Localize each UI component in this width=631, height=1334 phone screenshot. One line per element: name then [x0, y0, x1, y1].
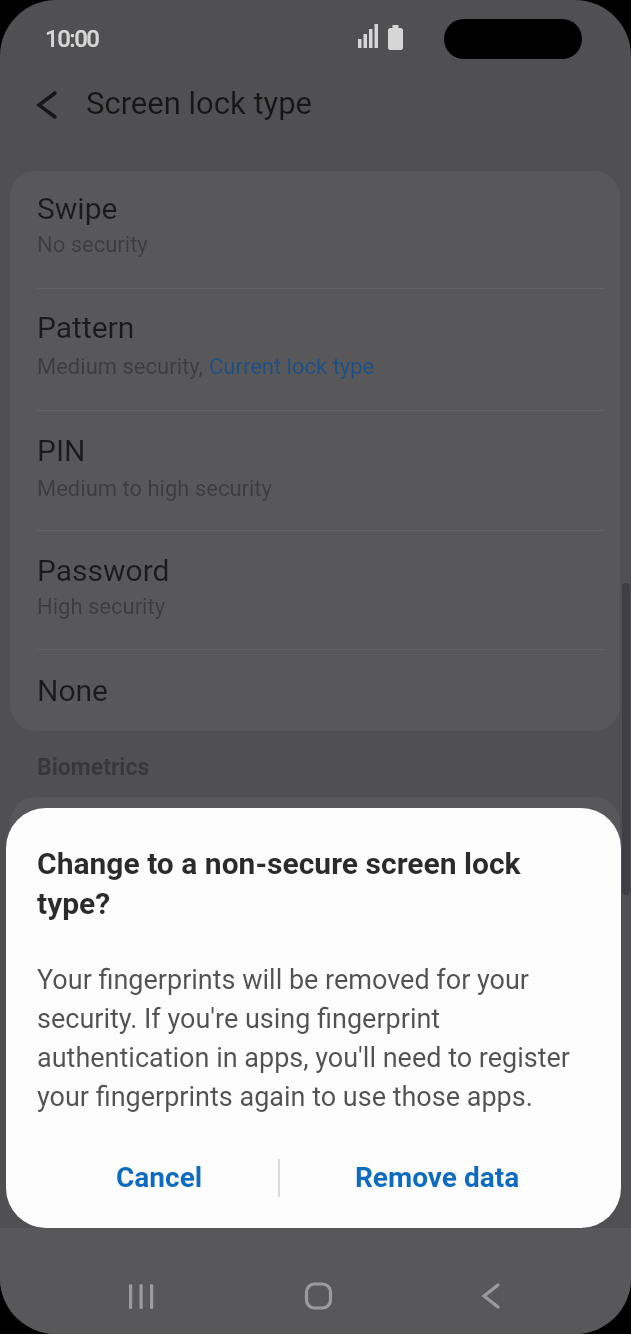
button[interactable]: Password [10, 531, 620, 649]
staticText: Biometrics [37, 754, 150, 781]
button[interactable]: Cancel [63, 1145, 255, 1209]
staticText: Password [37, 553, 170, 588]
button[interactable]: None [10, 650, 620, 731]
staticText: Change to a non-secure screen lock type? [37, 846, 521, 921]
staticText: Cancel [116, 1161, 203, 1194]
staticText: Medium to high security [37, 476, 272, 502]
staticText: Screen lock type [86, 85, 313, 121]
staticText: Pattern [37, 310, 135, 345]
staticText: Current lock type [209, 354, 375, 380]
button[interactable]: PIN [10, 411, 620, 530]
staticText: PIN [37, 433, 86, 468]
staticText: High security [37, 594, 166, 620]
staticText: Remove data [355, 1161, 520, 1194]
staticText: No security [37, 232, 148, 258]
button[interactable]: Swipe [10, 171, 620, 288]
staticText: None [37, 673, 108, 708]
button[interactable] [466, 1281, 518, 1311]
staticText: 10:00 [45, 25, 99, 53]
button[interactable] [292, 1281, 344, 1311]
button[interactable] [116, 1281, 166, 1311]
button[interactable] [26, 84, 70, 128]
staticText: Medium security, [37, 354, 209, 380]
staticText: Your fingerprints will be removed for yo… [37, 964, 570, 1112]
button[interactable]: Remove data [317, 1145, 557, 1209]
button[interactable]: Pattern [10, 289, 620, 410]
staticText: Swipe [37, 191, 118, 226]
